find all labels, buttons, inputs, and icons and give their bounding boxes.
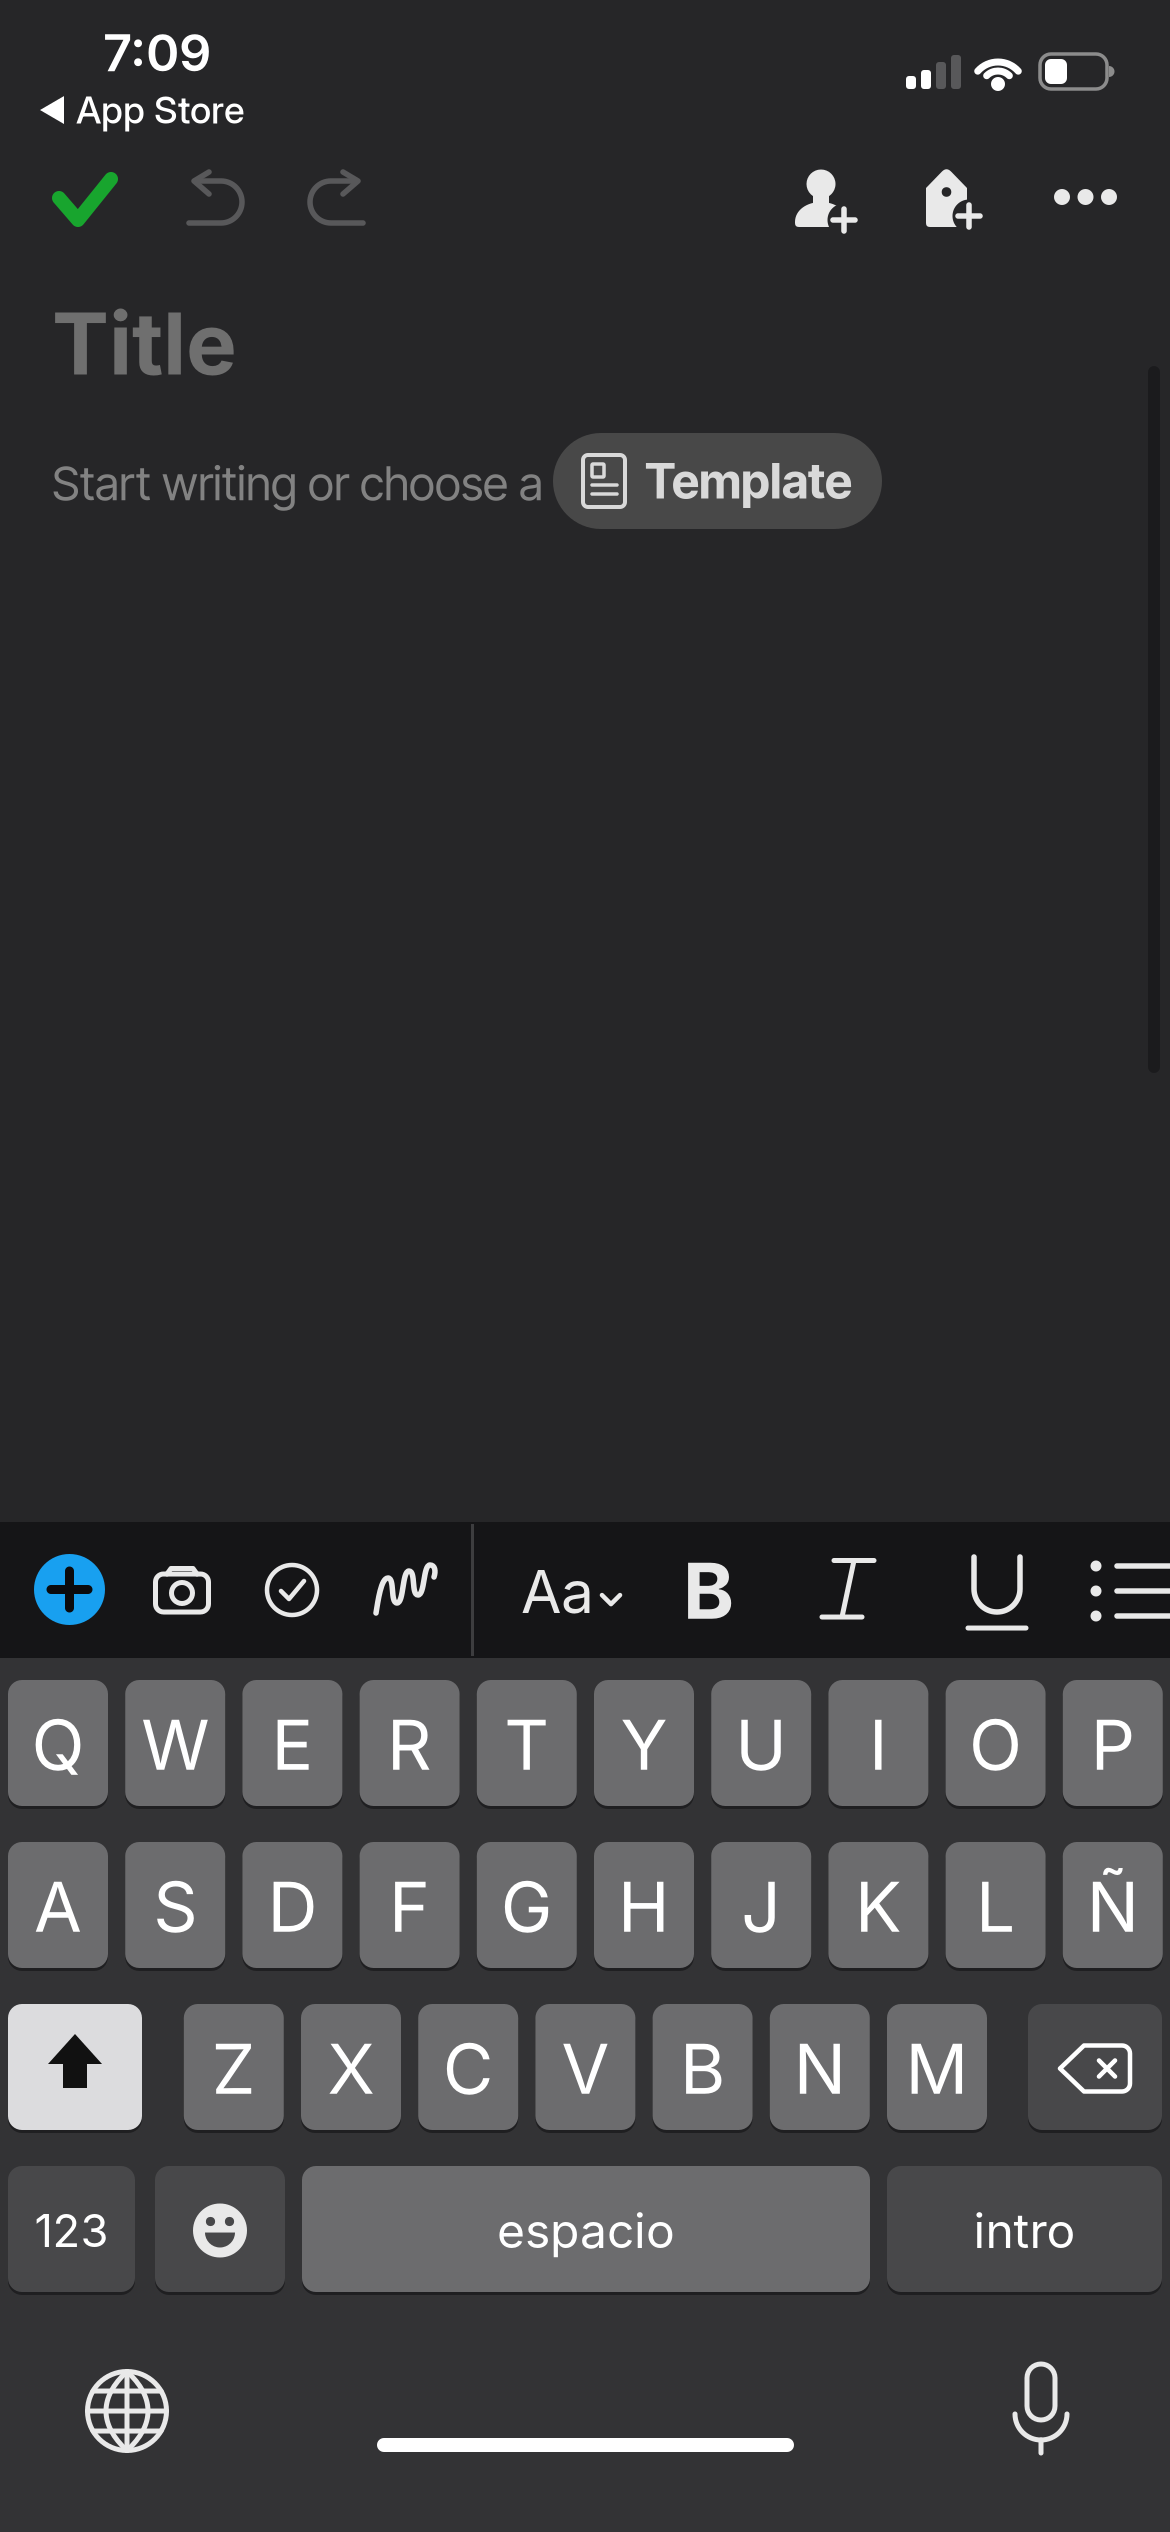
- staticText: G: [501, 1866, 553, 1947]
- button[interactable]: Y: [594, 1680, 694, 1809]
- button[interactable]: O: [946, 1680, 1046, 1809]
- staticText: M: [905, 2028, 968, 2109]
- staticText: O: [969, 1704, 1022, 1785]
- staticText: F: [389, 1866, 430, 1947]
- button[interactable]: J: [711, 1842, 811, 1971]
- button[interactable]: G: [477, 1842, 577, 1971]
- button[interactable]: intro: [887, 2166, 1162, 2295]
- button[interactable]: Share note: [795, 168, 857, 232]
- staticText: Template: [645, 452, 852, 510]
- staticText: 123: [34, 2204, 108, 2257]
- staticText: H: [618, 1866, 670, 1947]
- button[interactable]: F: [360, 1842, 460, 1971]
- button[interactable]: M: [887, 2004, 987, 2133]
- staticText: N: [794, 2028, 846, 2109]
- button[interactable]: Shift: [8, 2004, 142, 2133]
- button[interactable]: Dictate: [1013, 2364, 1069, 2456]
- staticText: Y: [620, 1704, 667, 1785]
- staticText: J: [741, 1866, 781, 1947]
- button[interactable]: R: [360, 1680, 460, 1809]
- button[interactable]: N: [770, 2004, 870, 2133]
- button[interactable]: Camera: [153, 1566, 211, 1614]
- staticText: A: [34, 1866, 82, 1947]
- button[interactable]: 123: [8, 2166, 135, 2295]
- button[interactable]: E: [242, 1680, 342, 1809]
- button[interactable]: Add tag: [912, 168, 984, 230]
- button[interactable]: Undo: [187, 172, 247, 228]
- staticText: P: [1091, 1704, 1135, 1785]
- button[interactable]: T: [477, 1680, 577, 1809]
- button[interactable]: D: [242, 1842, 342, 1971]
- button[interactable]: B: [653, 2004, 753, 2133]
- staticText: E: [271, 1704, 313, 1785]
- staticText: W: [141, 1704, 209, 1785]
- button[interactable]: Back to App Store: [40, 88, 245, 132]
- staticText: intro: [973, 2202, 1075, 2259]
- button[interactable]: Handwriting: [375, 1563, 435, 1615]
- button[interactable]: Italic: [820, 1558, 876, 1620]
- staticText: B: [680, 2028, 725, 2109]
- staticText: Z: [212, 2028, 256, 2109]
- staticText: R: [387, 1704, 432, 1785]
- button[interactable]: X: [301, 2004, 401, 2133]
- button[interactable]: Delete: [1028, 2004, 1162, 2133]
- staticText: V: [561, 2028, 609, 2109]
- button[interactable]: Underline: [968, 1557, 1030, 1633]
- staticText: D: [267, 1866, 317, 1947]
- button[interactable]: Emoji: [155, 2166, 285, 2295]
- button[interactable]: Template: [553, 433, 882, 529]
- staticText: X: [327, 2028, 374, 2109]
- button[interactable]: Q: [8, 1680, 108, 1809]
- button[interactable]: Next keyboard: [85, 2369, 169, 2453]
- button[interactable]: Text style: [521, 1557, 620, 1626]
- staticText: L: [976, 1866, 1015, 1947]
- button[interactable]: W: [125, 1680, 225, 1809]
- staticText: B: [683, 1545, 734, 1636]
- button[interactable]: More options: [1054, 189, 1118, 205]
- staticText: espacio: [497, 2202, 675, 2259]
- button[interactable]: Bulleted list: [1090, 1560, 1170, 1622]
- staticText: C: [443, 2028, 494, 2109]
- staticText: 7:09: [103, 23, 211, 83]
- button[interactable]: H: [594, 1842, 694, 1971]
- button[interactable]: K: [828, 1842, 928, 1971]
- button[interactable]: C: [418, 2004, 518, 2133]
- button[interactable]: U: [711, 1680, 811, 1809]
- button[interactable]: V: [535, 2004, 635, 2133]
- button[interactable]: Done: [51, 172, 119, 228]
- button[interactable]: I: [828, 1680, 928, 1809]
- staticText: Start writing or choose a: [52, 455, 543, 511]
- button[interactable]: Insert: [34, 1554, 105, 1625]
- button[interactable]: Checklist: [265, 1563, 319, 1617]
- staticText: K: [855, 1866, 902, 1947]
- button[interactable]: Bold: [683, 1545, 734, 1636]
- button[interactable]: Z: [184, 2004, 284, 2133]
- staticText: Aa: [521, 1557, 594, 1626]
- staticText: S: [153, 1866, 197, 1947]
- staticText: Q: [31, 1704, 84, 1785]
- staticText: Ñ: [1087, 1866, 1139, 1947]
- staticText: I: [869, 1704, 888, 1785]
- staticText: Title: [52, 293, 237, 394]
- staticText: App Store: [76, 88, 245, 132]
- button[interactable]: L: [946, 1842, 1046, 1971]
- button[interactable]: A: [8, 1842, 108, 1971]
- staticText: T: [504, 1704, 549, 1785]
- button[interactable]: P: [1063, 1680, 1163, 1809]
- button[interactable]: Redo: [308, 172, 368, 228]
- button[interactable]: S: [125, 1842, 225, 1971]
- button[interactable]: Ñ: [1063, 1842, 1163, 1971]
- staticText: U: [735, 1704, 787, 1785]
- button[interactable]: espacio: [302, 2166, 870, 2295]
